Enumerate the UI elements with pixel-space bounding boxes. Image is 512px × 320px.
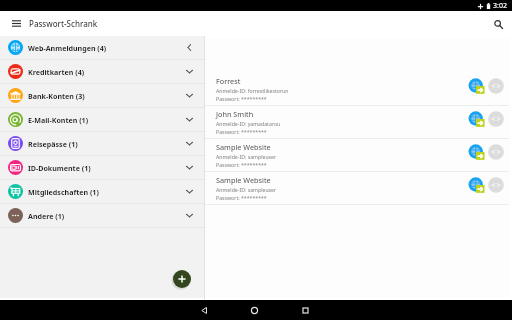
staticText: 3:02	[493, 1, 507, 11]
button[interactable]: Reisepässe (1)	[0, 132, 204, 156]
staticText: ID-Dokumente (1)	[28, 163, 91, 173]
staticText: Sample Website	[216, 175, 271, 185]
button[interactable]: Recents	[298, 303, 313, 318]
staticText: Mitgliedschaften (1)	[28, 187, 99, 197]
button[interactable]: ID-Dokumente (1)	[0, 156, 204, 180]
staticText: Passwort: *********	[216, 95, 267, 102]
staticText: Passwort: *********	[216, 194, 267, 201]
staticText: Web-Anmeldungen (4)	[28, 43, 107, 53]
staticText: Passwort: *********	[216, 161, 267, 168]
button[interactable]: Back	[197, 303, 212, 318]
staticText: Anmelde-ID: forrestlikestorun	[216, 87, 289, 94]
staticText: Sample Website	[216, 142, 271, 152]
button[interactable]: Show password	[488, 111, 504, 127]
button[interactable]: Show password	[488, 177, 504, 193]
button[interactable]: Home	[247, 303, 262, 318]
staticText: Anmelde-ID: sampleuser	[216, 153, 277, 160]
staticText: Passwort-Schrank	[29, 18, 98, 29]
button[interactable]: Open website	[469, 144, 485, 160]
button[interactable]: Add	[173, 270, 191, 288]
button[interactable]: Bank-Konten (3)	[0, 84, 204, 108]
staticText: Forrest	[216, 76, 241, 86]
staticText: Reisepässe (1)	[28, 139, 78, 149]
staticText: Bank-Konten (3)	[28, 91, 85, 101]
staticText: Passwort: *********	[216, 128, 267, 135]
staticText: John Smith	[216, 109, 254, 119]
button[interactable]: Mitgliedschaften (1)	[0, 180, 204, 204]
staticText: E-Mail-Konten (1)	[28, 115, 89, 125]
button[interactable]: John Smith	[205, 106, 509, 139]
button[interactable]: Kreditkarten (4)	[0, 60, 204, 84]
button[interactable]: Web-Anmeldungen (4)	[0, 36, 204, 60]
staticText: Andere (1)	[28, 211, 65, 221]
button[interactable]: E-Mail-Konten (1)	[0, 108, 204, 132]
button[interactable]: Open website	[469, 177, 485, 193]
button[interactable]: Search	[490, 16, 506, 32]
button[interactable]: Sample Website	[205, 139, 509, 172]
button[interactable]: Open website	[469, 111, 485, 127]
button[interactable]: Show password	[488, 144, 504, 160]
staticText: Kreditkarten (4)	[28, 67, 85, 77]
button[interactable]: Open website	[469, 78, 485, 94]
button[interactable]: Menu	[9, 16, 24, 31]
button[interactable]: Sample Website	[205, 172, 509, 205]
button[interactable]: Show password	[488, 78, 504, 94]
staticText: Anmelde-ID: yamadatarou	[216, 120, 281, 127]
staticText: Anmelde-ID: sampleuser	[216, 186, 277, 193]
button[interactable]: Forrest	[205, 73, 509, 106]
button[interactable]: Andere (1)	[0, 204, 204, 228]
